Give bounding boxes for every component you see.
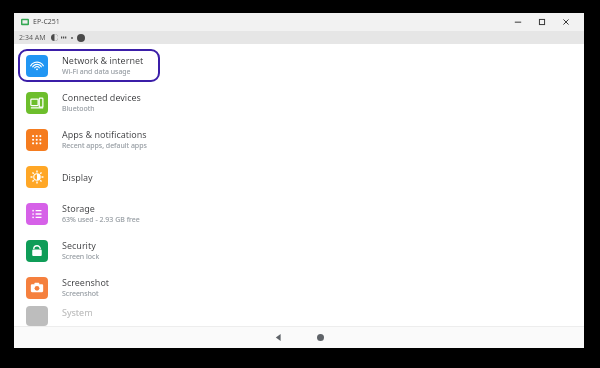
staticText: Apps & notifications <box>62 128 147 140</box>
button[interactable]: Home <box>307 327 333 348</box>
staticText: System <box>62 306 93 318</box>
staticText: Bluetooth <box>62 104 95 114</box>
button[interactable]: Security <box>14 232 584 269</box>
staticText: Screenshot <box>62 289 99 299</box>
staticText: Network & internet <box>62 54 144 66</box>
button[interactable]: Maximize <box>530 14 554 30</box>
button[interactable]: Storage <box>14 195 584 232</box>
button[interactable]: Apps & notifications <box>14 121 584 158</box>
button[interactable]: Close <box>554 14 578 30</box>
staticText: Security <box>62 239 96 251</box>
staticText: Connected devices <box>62 91 141 103</box>
button[interactable]: Minimize <box>506 14 530 30</box>
staticText: 2:34 AM <box>19 33 46 43</box>
staticText: Storage <box>62 202 95 214</box>
staticText: EP-C251 <box>33 17 60 27</box>
button[interactable]: Connected devices <box>14 84 584 121</box>
staticText: Screenshot <box>62 276 110 288</box>
button[interactable]: Display <box>14 158 584 195</box>
button[interactable]: Screenshot <box>14 269 584 306</box>
staticText: Wi-Fi and data usage <box>62 67 131 77</box>
button[interactable]: System <box>14 306 584 326</box>
staticText: Display <box>62 171 93 183</box>
button[interactable]: Network & internet <box>14 47 584 84</box>
button[interactable]: Back <box>265 327 291 348</box>
staticText: Screen lock <box>62 252 100 262</box>
staticText: 63% used - 2.93 GB free <box>62 215 140 225</box>
staticText: Recent apps, default apps <box>62 141 147 151</box>
